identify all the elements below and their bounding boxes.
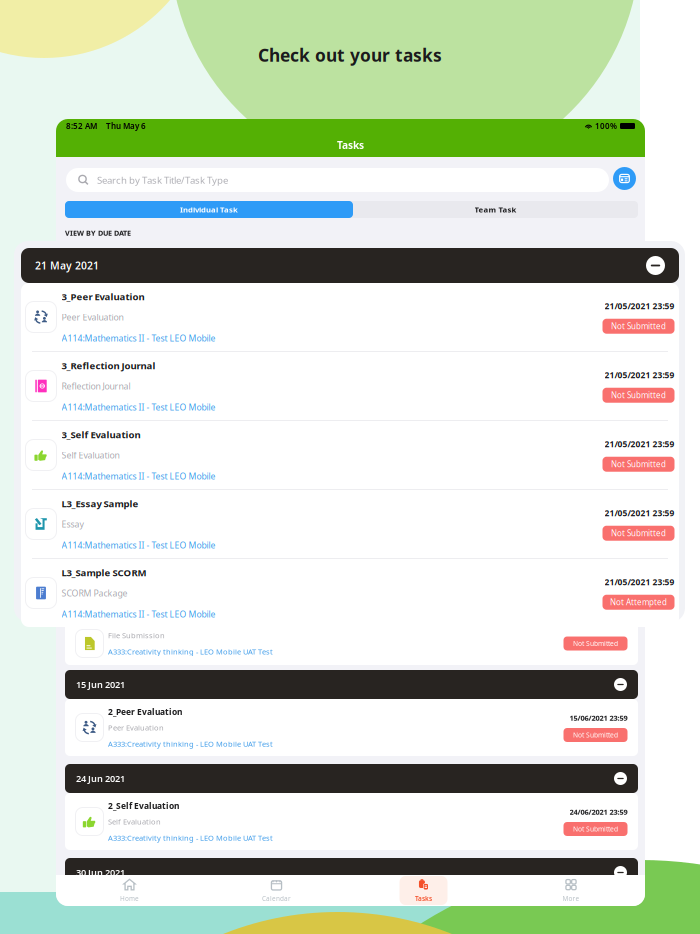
button[interactable]: Home — [56, 876, 203, 905]
staticText: Not Submitted — [573, 310, 618, 319]
button[interactable]: 3_Reflection Journal — [65, 342, 638, 412]
button[interactable]: 3_Self Evaluation — [65, 412, 638, 482]
staticText: Not Submitted — [573, 730, 618, 740]
staticText: Not Attempted — [573, 590, 618, 599]
staticText: 8:52 AM — [66, 121, 97, 131]
button[interactable]: Filter options — [613, 167, 636, 190]
staticText: Thu May 6 — [106, 121, 146, 131]
button[interactable]: 15 Jun 2021 — [65, 670, 638, 699]
staticText: VIEW BY DUE DATE — [65, 228, 131, 238]
staticText: 3_Reflection Journal — [108, 356, 191, 367]
staticText: Calendar — [262, 894, 291, 903]
staticText: Self Evaluation — [108, 817, 161, 827]
staticText: A114:Mathematics II - Test LEO Mobile — [61, 539, 215, 551]
button[interactable]: 21 May 2021 — [65, 243, 638, 272]
staticText: Not Submitted — [573, 824, 618, 834]
staticText: Peer Evaluation — [108, 723, 164, 733]
staticText: 21/05/2021 23:59 — [604, 576, 674, 588]
staticText: 3_Peer Evaluation — [108, 286, 182, 297]
button[interactable]: Calendar — [203, 876, 350, 905]
staticText: 21/05/2021 23:59 — [569, 502, 627, 512]
button[interactable]: 3_Self Evaluation — [21, 421, 679, 489]
staticText: 3_Self Evaluation — [108, 426, 179, 437]
staticText: Team Task — [474, 204, 516, 215]
staticText: Not Submitted — [611, 459, 666, 470]
staticText: 3_Self Evaluation — [61, 428, 140, 441]
button[interactable]: Individual Task — [65, 201, 353, 218]
staticText: 100% — [595, 121, 617, 131]
staticText: 21/05/2021 23:59 — [604, 369, 674, 381]
staticText: A114:Mathematics II - Test LEO Mobile — [108, 388, 246, 398]
button[interactable]: L3_Sample SCORM — [65, 552, 638, 622]
staticText: 3_Reflection Journal — [61, 359, 155, 372]
staticText: Not Submitted — [573, 639, 618, 648]
button[interactable]: L3_Essay Sample — [65, 482, 638, 552]
staticText: 3_Peer Evaluation — [61, 290, 144, 303]
staticText: Not Submitted — [611, 528, 666, 539]
button[interactable]: 21 May 2021 — [21, 248, 679, 283]
staticText: A333:Creativity thinking - LEO Mobile UA… — [108, 739, 273, 749]
button[interactable]: 3_Reflection Journal — [21, 352, 679, 420]
staticText: Tasks — [415, 894, 432, 903]
staticText: Search by Task Title/Task Type — [97, 173, 228, 187]
staticText: A333:Creativity thinking - LEO Mobile UA… — [108, 646, 273, 657]
staticText: Home — [120, 894, 139, 903]
button[interactable]: Team Task — [353, 201, 638, 218]
staticText: A114:Mathematics II - Test LEO Mobile — [61, 401, 215, 413]
staticText: A114:Mathematics II - Test LEO Mobile — [61, 332, 215, 344]
button[interactable]: More — [497, 876, 645, 905]
staticText: Not Submitted — [611, 390, 666, 401]
staticText: 21/05/2021 23:59 — [604, 438, 674, 450]
button[interactable]: Tasks — [350, 876, 497, 905]
staticText: A114:Mathematics II - Test LEO Mobile — [61, 608, 215, 620]
staticText: Not Submitted — [573, 380, 618, 389]
staticText: Not Attempted — [610, 597, 667, 608]
staticText: A114:Mathematics II - Test LEO Mobile — [61, 470, 215, 482]
staticText: 2_Self Evaluation — [108, 800, 179, 811]
staticText: 21/05/2021 23:59 — [569, 432, 627, 442]
button[interactable]: 24 Jun 2021 — [65, 764, 638, 793]
staticText: L3_Essay Sample — [108, 496, 177, 507]
button[interactable]: 3_Peer Evaluation — [21, 283, 679, 351]
staticText: SCORM Package — [61, 587, 127, 599]
button[interactable]: 2_Peer Evaluation — [65, 699, 638, 756]
button[interactable]: 30 Jun 2021 — [65, 858, 638, 887]
button[interactable]: Search by Task Title/Task Type — [66, 168, 609, 192]
button[interactable]: L3_Sample SCORM — [21, 559, 679, 627]
button[interactable]: File Submission — [65, 622, 638, 665]
button[interactable]: 3_Peer Evaluation — [65, 272, 638, 342]
staticText: 15/06/2021 23:59 — [569, 713, 627, 723]
staticText: Self Evaluation — [61, 449, 119, 461]
staticText: Not Submitted — [611, 321, 666, 332]
staticText: 21/05/2021 23:59 — [604, 300, 674, 312]
staticText: Individual Task — [180, 204, 238, 215]
button[interactable]: L3_Essay Sample — [21, 490, 679, 558]
staticText: 21/05/2021 23:59 — [604, 507, 674, 519]
staticText: L3_Sample SCORM — [108, 566, 185, 577]
staticText: 24/06/2021 23:59 — [569, 807, 627, 817]
staticText: SCORM Package — [108, 582, 167, 592]
staticText: 21 May 2021 — [35, 258, 99, 273]
staticText: A114:Mathematics II - Test LEO Mobile — [108, 318, 246, 328]
staticText: Not Submitted — [573, 450, 618, 459]
staticText: 21 May 2021 — [76, 251, 129, 264]
staticText: 15 Jun 2021 — [76, 678, 125, 691]
staticText: L3_Essay Sample — [61, 497, 138, 510]
staticText: 30 Jun 2021 — [76, 866, 125, 879]
staticText: L3_Sample SCORM — [61, 566, 146, 579]
staticText: More — [562, 894, 579, 903]
staticText: 2_Peer Evaluation — [108, 706, 182, 717]
button[interactable]: 2_Self Evaluation — [65, 793, 638, 850]
staticText: Tasks — [337, 138, 364, 152]
staticText: Essay — [61, 518, 83, 530]
staticText: 24 Jun 2021 — [76, 772, 125, 785]
staticText: Reflection Journal — [61, 380, 130, 392]
